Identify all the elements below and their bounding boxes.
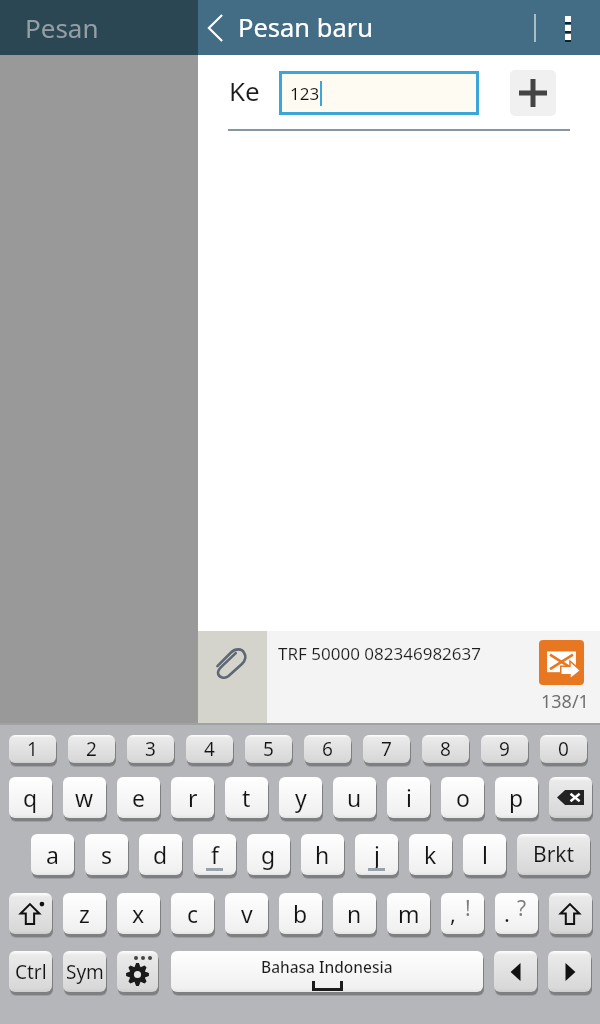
button[interactable]: Left	[494, 951, 537, 992]
button[interactable]: Pesan	[0, 0, 198, 55]
staticText: Sym	[66, 959, 104, 985]
staticText: ,	[450, 898, 456, 928]
staticText: w	[75, 782, 94, 813]
button[interactable]: 6	[304, 735, 351, 763]
button[interactable]: 1	[9, 735, 56, 763]
button[interactable]: 123	[282, 74, 476, 112]
button[interactable]: Period	[495, 893, 538, 934]
button[interactable]: i	[387, 777, 430, 818]
staticText: .	[504, 898, 510, 928]
staticText: e	[132, 782, 145, 813]
button[interactable]: m	[387, 893, 430, 934]
staticText: r	[188, 782, 198, 813]
button[interactable]: b	[279, 893, 322, 934]
button[interactable]: 3	[127, 735, 174, 763]
button[interactable]: Right	[548, 951, 591, 992]
staticText: z	[79, 898, 90, 929]
button[interactable]: Ctrl	[9, 951, 52, 992]
button[interactable]: x	[117, 893, 160, 934]
button[interactable]: e	[117, 777, 160, 818]
button[interactable]: w	[63, 777, 106, 818]
button[interactable]: t	[225, 777, 268, 818]
button[interactable]: Shift	[549, 893, 592, 934]
staticText: Pesan baru	[238, 10, 373, 45]
button[interactable]: Space	[171, 951, 483, 992]
button[interactable]: c	[171, 893, 214, 934]
staticText: n	[347, 898, 362, 929]
button[interactable]: u	[333, 777, 376, 818]
staticText: Ke	[229, 73, 260, 108]
button[interactable]: 5	[245, 735, 292, 763]
button[interactable]: n	[333, 893, 376, 934]
button[interactable]: s	[85, 834, 128, 875]
button[interactable]: 7	[363, 735, 410, 763]
button[interactable]: f	[193, 834, 236, 875]
staticText: v	[241, 898, 253, 929]
button[interactable]: o	[441, 777, 484, 818]
button[interactable]: Brkt	[517, 834, 590, 875]
staticText: k	[424, 839, 437, 870]
button[interactable]: Add recipient	[510, 70, 556, 116]
button[interactable]: More options	[536, 0, 600, 55]
staticText: 138/1	[541, 689, 589, 714]
staticText: j	[374, 839, 380, 870]
staticText: i	[406, 782, 412, 813]
staticText: Ctrl	[15, 959, 47, 985]
staticText: ?	[517, 894, 527, 923]
staticText: c	[187, 898, 199, 929]
staticText: 7	[381, 736, 392, 762]
button[interactable]: 8	[422, 735, 469, 763]
staticText: TRF 50000 082346982637	[278, 642, 481, 665]
staticText: m	[398, 898, 420, 929]
button[interactable]: r	[171, 777, 214, 818]
button[interactable]: 2	[68, 735, 115, 763]
button[interactable]: j	[355, 834, 398, 875]
button[interactable]: Backspace	[549, 777, 592, 818]
button[interactable]: TRF 50000 082346982637	[267, 631, 523, 723]
button[interactable]: q	[9, 777, 52, 818]
staticText: f	[211, 839, 219, 870]
staticText: g	[261, 839, 276, 870]
staticText: q	[23, 782, 38, 813]
staticText: Pesan	[25, 10, 99, 45]
button[interactable]: p	[495, 777, 538, 818]
button[interactable]: 0	[540, 735, 587, 763]
button[interactable]: Back	[198, 0, 233, 55]
button[interactable]: 9	[481, 735, 528, 763]
button[interactable]: Shift	[9, 893, 52, 934]
staticText: p	[509, 782, 524, 813]
staticText: l	[482, 839, 488, 870]
button[interactable]: y	[279, 777, 322, 818]
button[interactable]: l	[463, 834, 506, 875]
button[interactable]: g	[247, 834, 290, 875]
button[interactable]: Attach	[198, 631, 267, 723]
button[interactable]: Settings	[117, 951, 158, 992]
staticText: !	[465, 894, 471, 923]
staticText: h	[315, 839, 330, 870]
staticText: 2	[86, 736, 97, 762]
button[interactable]: z	[63, 893, 106, 934]
staticText: 6	[322, 736, 333, 762]
staticText: 4	[204, 736, 215, 762]
staticText: o	[456, 782, 470, 813]
staticText: Brkt	[533, 840, 575, 869]
button[interactable]: k	[409, 834, 452, 875]
button[interactable]: v	[225, 893, 268, 934]
staticText: 123	[290, 82, 320, 105]
button[interactable]: 4	[186, 735, 233, 763]
staticText: Bahasa Indonesia	[261, 956, 393, 977]
button[interactable]: h	[301, 834, 344, 875]
staticText: t	[242, 782, 251, 813]
staticText: a	[46, 839, 59, 870]
button[interactable]: Comma	[441, 893, 484, 934]
staticText: u	[347, 782, 362, 813]
staticText: 9	[499, 736, 510, 762]
button[interactable]: Sym	[63, 951, 106, 992]
staticText: 1	[27, 736, 38, 762]
button[interactable]: d	[139, 834, 182, 875]
button[interactable]: a	[31, 834, 74, 875]
staticText: 0	[558, 736, 569, 762]
staticText: x	[132, 898, 145, 929]
button[interactable]: Send message	[539, 640, 584, 685]
staticText: 8	[440, 736, 451, 762]
